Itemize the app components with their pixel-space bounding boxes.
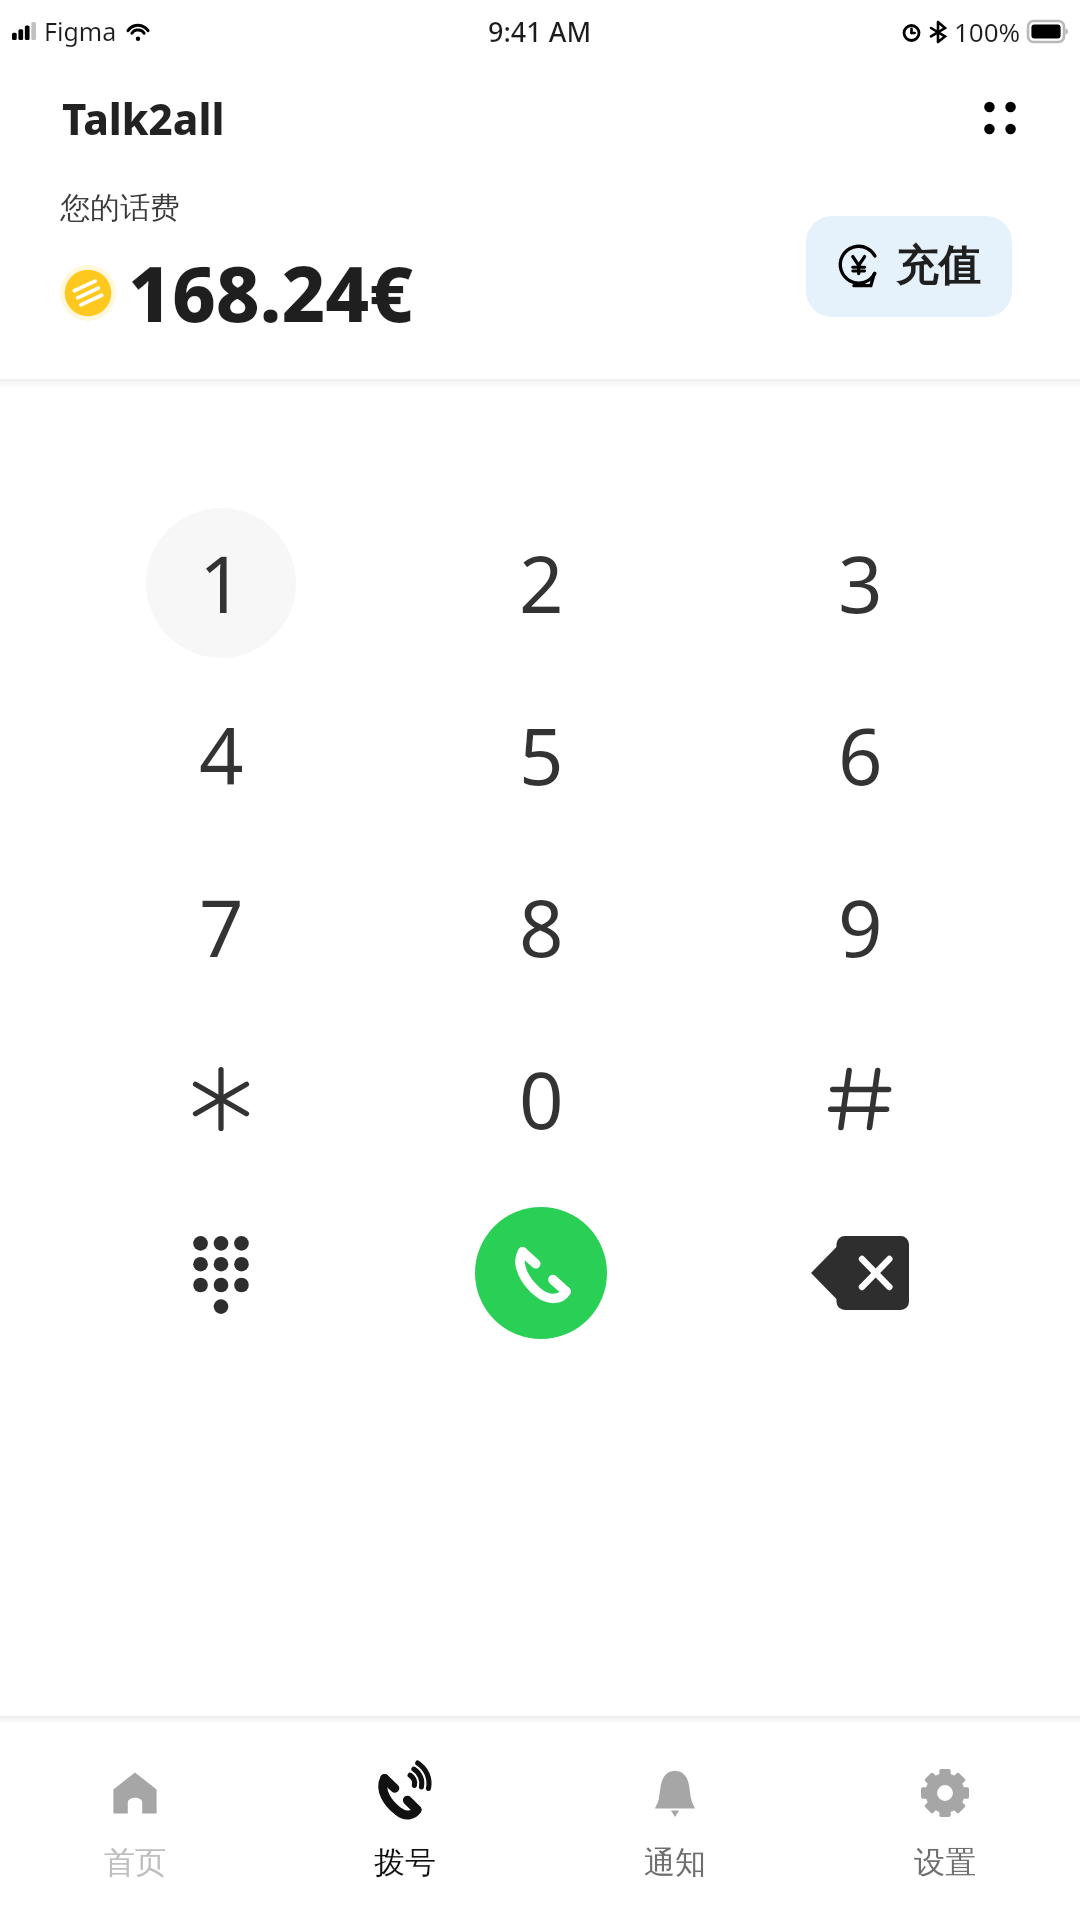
button[interactable]: 设置 [810,1724,1080,1920]
button[interactable]: 5 [466,680,616,830]
staticText: 0 [519,1046,564,1152]
button[interactable]: 3 [785,508,935,658]
button[interactable]: 2 [466,508,616,658]
staticText: 168.24€ [128,241,414,345]
button[interactable]: 4 [146,680,296,830]
staticText: 首页 [104,1843,166,1882]
button[interactable]: 1 [146,508,296,658]
button[interactable]: 0 [466,1024,616,1174]
staticText: 6 [838,702,883,808]
button[interactable]: 8 [466,852,616,1002]
button[interactable] [146,1024,296,1174]
button[interactable]: Keypad [155,1207,287,1339]
button[interactable]: 6 [785,680,935,830]
staticText: 充值 [896,240,980,293]
button[interactable]: 拨号 [270,1724,540,1920]
staticText: 9:41 AM [488,13,592,50]
staticText: 1 [199,530,244,636]
staticText: 您的话费 [60,189,180,227]
staticText: 设置 [914,1843,976,1882]
button[interactable]: 通知 [540,1724,810,1920]
staticText: 7 [199,874,244,980]
button[interactable]: 首页 [0,1724,270,1920]
staticText: 100% [954,14,1021,49]
staticText: 3 [838,530,883,636]
button[interactable]: 充值 [806,216,1012,317]
button[interactable]: 9 [785,852,935,1002]
button[interactable]: 7 [146,852,296,1002]
button[interactable]: Backspace [794,1207,926,1339]
button[interactable] [785,1024,935,1174]
staticText: 4 [199,702,244,808]
staticText: 2 [519,530,564,636]
staticText: 拨号 [374,1843,436,1882]
staticText: Talk2all [62,90,225,147]
staticText: 9 [838,874,883,980]
button[interactable]: Call [475,1207,607,1339]
staticText: 通知 [644,1843,706,1882]
staticText: 8 [519,874,564,980]
staticText: Figma [44,14,117,48]
staticText: 5 [519,702,564,808]
button[interactable]: More options [960,78,1040,158]
